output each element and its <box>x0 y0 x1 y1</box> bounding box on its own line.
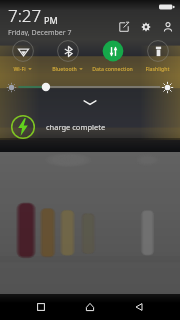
button[interactable]: Home <box>79 296 101 318</box>
staticText: Friday, December 7 <box>8 28 72 36</box>
staticText: Flashlight <box>145 65 170 72</box>
staticText: Wi-Fi <box>13 65 26 72</box>
staticText: PM <box>44 14 58 26</box>
button[interactable]: Wi-Fi <box>0 38 45 74</box>
button[interactable]: Collapse quick settings <box>0 97 180 107</box>
button[interactable]: Bluetooth <box>45 38 90 74</box>
button[interactable]: User profile <box>161 20 174 33</box>
button[interactable]: Recent apps <box>30 296 52 318</box>
staticText: 7:27 <box>8 4 42 27</box>
button[interactable]: Edit quick settings <box>117 20 130 33</box>
button[interactable]: Settings <box>139 20 152 33</box>
button[interactable]: Brightness <box>7 79 173 95</box>
other: Battery full <box>159 3 175 11</box>
staticText: Bluetooth <box>52 65 77 72</box>
button[interactable]: Flashlight <box>135 38 180 74</box>
button[interactable]: Back <box>128 296 150 318</box>
button[interactable]: Data connection <box>90 38 135 74</box>
button[interactable]: charge complete notification <box>0 108 180 146</box>
staticText: charge complete <box>46 122 106 132</box>
staticText: Data connection <box>92 65 133 72</box>
